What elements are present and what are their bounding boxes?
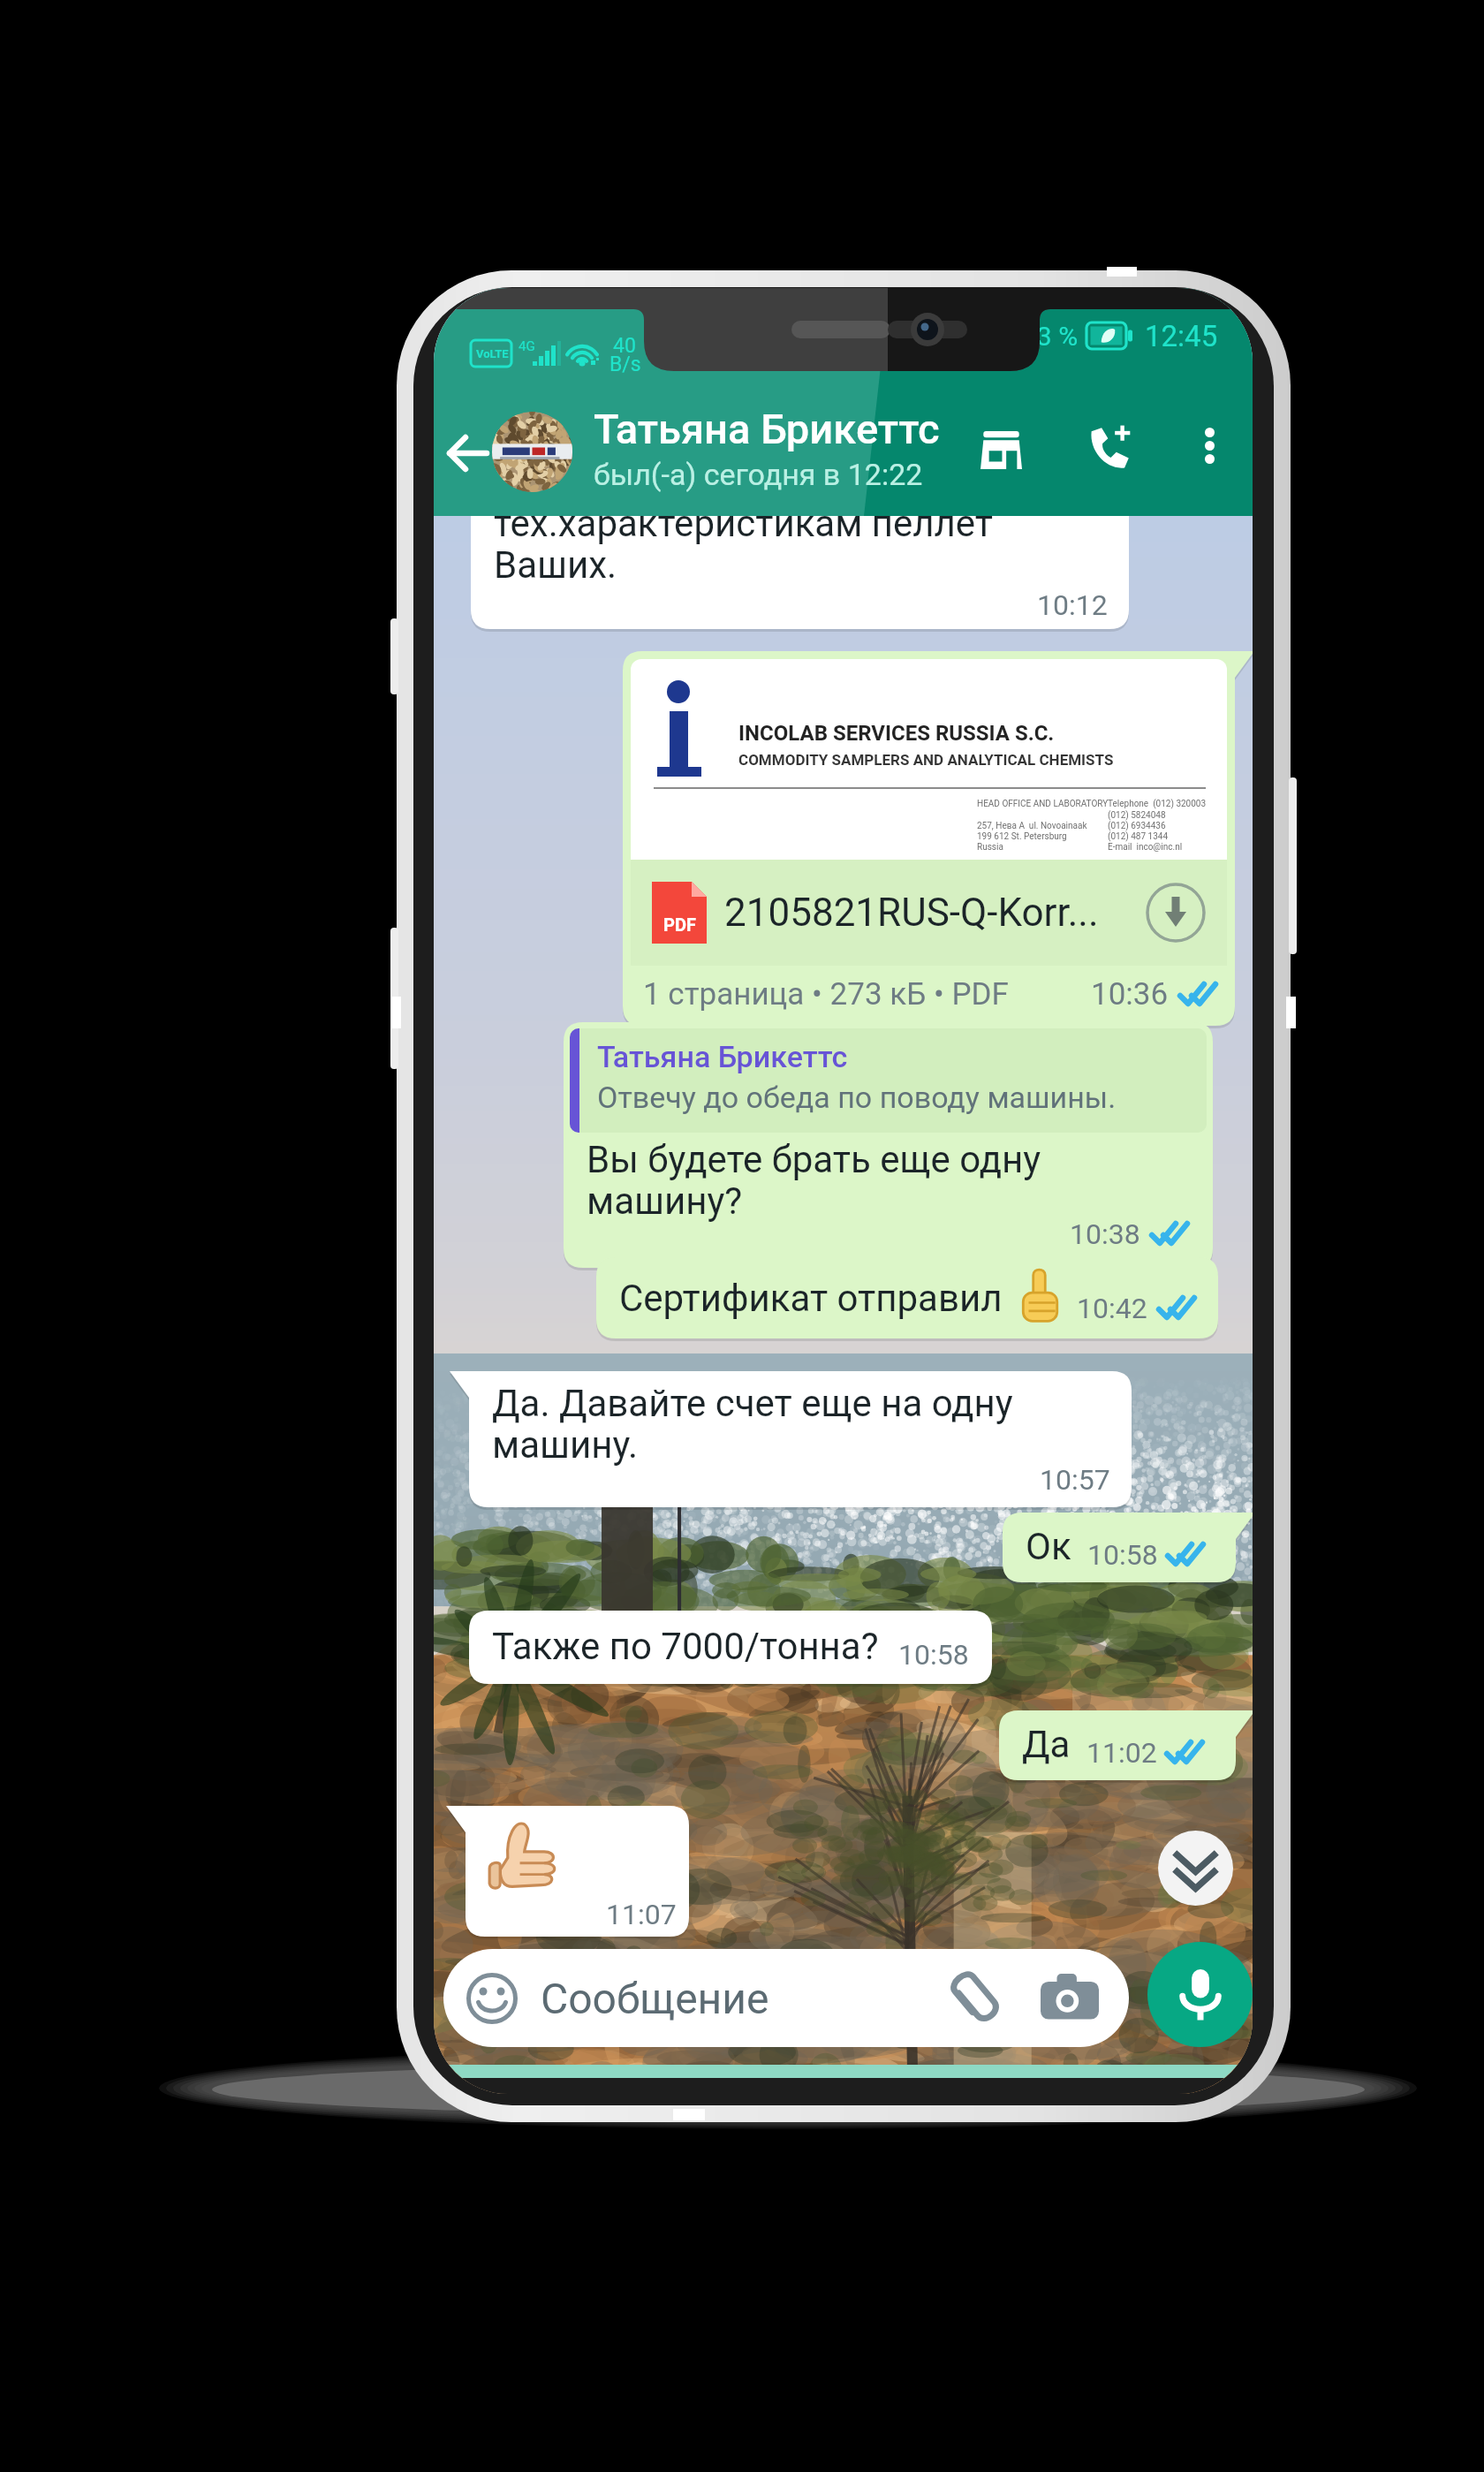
staticText: Telephone (012) 320003 (012) 5824048 (01… <box>1108 799 1207 852</box>
button[interactable]: Татьяна Брикеттс <box>594 405 973 492</box>
button[interactable]: Back <box>434 414 501 492</box>
button[interactable]: Record voice message <box>1147 1942 1253 2047</box>
staticText: 40 <box>613 334 636 358</box>
button[interactable]: Да <box>999 1710 1236 1780</box>
button[interactable]: Ок <box>1003 1513 1236 1582</box>
staticText: Сертификат отправил <box>619 1277 1003 1320</box>
staticText: 11:02 <box>1086 1736 1157 1770</box>
staticText: 10:58 <box>898 1638 969 1672</box>
staticText: 10:42 <box>1077 1292 1147 1325</box>
button[interactable]: INCOLAB SERVICES RUSSIA S.C. <box>623 651 1235 1026</box>
button[interactable]: More options <box>1177 413 1241 477</box>
button[interactable]: Business profile <box>964 413 1038 487</box>
staticText: 2105821RUS-Q-Korr... <box>724 890 1099 936</box>
staticText: Дополнить по тех.характеристикам пеллет … <box>494 460 994 587</box>
staticText: Да <box>1022 1723 1071 1766</box>
staticText: INCOLAB SERVICES RUSSIA S.C. <box>738 721 1055 746</box>
staticText: 1 страница • 273 кБ • PDF <box>643 976 1009 1012</box>
staticText: Сообщение <box>541 1974 769 2023</box>
staticText: был(-а) сегодня в 12:22 <box>594 457 923 492</box>
staticText: VoLTE <box>476 347 509 360</box>
staticText: HEAD OFFICE AND LABORATORY 257, Нева А u… <box>977 799 1109 852</box>
staticText: 10:58 <box>1087 1538 1158 1572</box>
button[interactable]: 11:07 <box>466 1806 689 1937</box>
button[interactable]: Scroll to bottom <box>1158 1831 1233 1906</box>
staticText: B/s <box>609 353 641 376</box>
staticText: 11:07 <box>606 1898 677 1931</box>
staticText: 12:45 <box>1145 319 1218 353</box>
button[interactable]: Contact photo <box>492 412 572 492</box>
button[interactable]: Татьяна Брикеттс <box>564 1022 1213 1268</box>
staticText: Вы будете брать еще одну машину? <box>587 1138 1041 1223</box>
staticText: PDF <box>663 914 696 935</box>
button[interactable]: Сертификат отправил <box>596 1257 1218 1338</box>
button[interactable]: Call <box>1074 409 1148 483</box>
button[interactable]: Дополнить по тех.характеристикам пеллет … <box>471 448 1129 629</box>
staticText: 10:38 <box>1070 1217 1140 1251</box>
button[interactable]: Сообщение <box>443 1949 1129 2047</box>
staticText: Татьяна Брикеттс <box>594 405 940 453</box>
staticText: 10:36 <box>1091 976 1169 1012</box>
staticText: Татьяна Брикеттс <box>597 1039 848 1074</box>
staticText: Да. Давайте счет еще на одну машину. <box>492 1382 1013 1467</box>
staticText: Ок <box>1026 1525 1071 1568</box>
staticText: 4G <box>519 338 535 354</box>
staticText: 73 % <box>1022 321 1079 352</box>
staticText: Отвечу до обеда по поводу машины. <box>597 1080 1117 1115</box>
staticText: 10:12 <box>1037 588 1108 622</box>
button[interactable]: Да. Давайте счет еще на одну машину. <box>469 1371 1132 1507</box>
staticText: Также по 7000/тонна? <box>492 1625 879 1668</box>
button[interactable]: Также по 7000/тонна? <box>469 1611 992 1684</box>
staticText: 10:57 <box>1040 1463 1110 1497</box>
staticText: COMMODITY SAMPLERS AND ANALYTICAL CHEMIS… <box>738 751 1114 769</box>
